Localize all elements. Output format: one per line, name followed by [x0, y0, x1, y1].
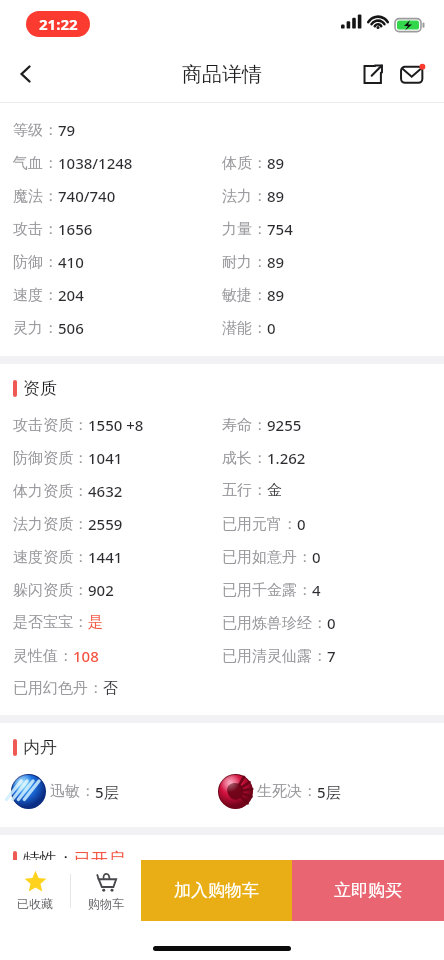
staticText: 敏捷： [222, 286, 267, 305]
button[interactable]: 加入购物车 [141, 860, 292, 921]
staticText: 灵性值： [13, 647, 73, 666]
button[interactable]: 购物车 [71, 860, 141, 921]
staticText: 5层 [317, 782, 341, 802]
staticText: 已用千金露： [222, 581, 312, 600]
staticText: 法力资质： [13, 515, 88, 534]
staticText: 加入购物车 [174, 880, 259, 901]
staticText: 等级： [13, 121, 58, 140]
staticText: 89 [267, 285, 285, 305]
staticText: 5层 [95, 782, 119, 802]
staticText: 4632 [88, 481, 123, 501]
staticText: 已收藏 [17, 896, 53, 911]
staticText: 79 [58, 120, 76, 140]
staticText: 1441 [88, 547, 123, 567]
staticText: 立即购买 [334, 880, 402, 901]
staticText: 1.262 [267, 448, 306, 468]
staticText: 速度资质： [13, 548, 88, 567]
staticText: 金 [267, 481, 282, 500]
staticText: 防御： [13, 253, 58, 272]
button[interactable]: Share [352, 54, 392, 94]
staticText: 4 [312, 580, 321, 600]
staticText: 力量： [222, 220, 267, 239]
staticText: 迅敏： [50, 782, 95, 801]
staticText: 902 [88, 580, 114, 600]
button[interactable]: Messages [392, 53, 434, 95]
staticText: 2559 [88, 514, 123, 534]
staticText: 潜能： [222, 319, 267, 338]
staticText: 已用幻色丹： [13, 679, 103, 698]
staticText: 生死决： [257, 782, 317, 801]
staticText: 寿命： [222, 416, 267, 435]
staticText: 五行： [222, 481, 267, 500]
staticText: 0 [267, 318, 276, 338]
staticText: 是否宝宝： [13, 613, 88, 632]
staticText: 气血： [13, 154, 58, 173]
staticText: 已用如意丹： [222, 548, 312, 567]
staticText: 资质 [23, 378, 57, 399]
staticText: 攻击资质： [13, 416, 88, 435]
staticText: 108 [73, 646, 99, 666]
staticText: 0 [297, 514, 306, 534]
staticText: 商品详情 [182, 62, 262, 87]
staticText: 速度： [13, 286, 58, 305]
staticText: 1550 +8 [88, 415, 144, 435]
staticText: 1656 [58, 219, 93, 239]
staticText: 成长： [222, 449, 267, 468]
staticText: 0 [312, 547, 321, 567]
staticText: 躲闪资质： [13, 581, 88, 600]
staticText: 89 [267, 252, 285, 272]
staticText: 已用清灵仙露： [222, 647, 327, 666]
staticText: 灵力： [13, 319, 58, 338]
staticText: 89 [267, 153, 285, 173]
staticText: 特性： [23, 849, 74, 870]
staticText: 0 [327, 613, 336, 633]
staticText: 754 [267, 219, 293, 239]
staticText: 9255 [267, 415, 302, 435]
staticText: 已用炼兽珍经： [222, 614, 327, 633]
staticText: 体力资质： [13, 482, 88, 501]
staticText: 魔法： [13, 187, 58, 206]
staticText: 740/740 [58, 186, 116, 206]
staticText: 已用元宵： [222, 515, 297, 534]
staticText: 体质： [222, 154, 267, 173]
staticText: 已开启 [74, 849, 125, 870]
staticText: 是 [88, 613, 103, 632]
button[interactable]: 立即购买 [292, 860, 444, 921]
staticText: 内丹 [23, 737, 57, 758]
button[interactable]: Back [0, 46, 52, 102]
button[interactable]: 已收藏 [0, 860, 70, 921]
staticText: 法力： [222, 187, 267, 206]
staticText: 防御资质： [13, 449, 88, 468]
staticText: 攻击： [13, 220, 58, 239]
staticText: 否 [103, 679, 118, 698]
staticText: 耐力： [222, 253, 267, 272]
staticText: 1038/1248 [58, 153, 133, 173]
staticText: 1041 [88, 448, 123, 468]
staticText: 506 [58, 318, 84, 338]
staticText: 89 [267, 186, 285, 206]
staticText: 7 [327, 646, 336, 666]
staticText: 204 [58, 285, 84, 305]
staticText: 21:22 [39, 14, 78, 34]
staticText: 410 [58, 252, 84, 272]
staticText: 购物车 [88, 896, 124, 911]
